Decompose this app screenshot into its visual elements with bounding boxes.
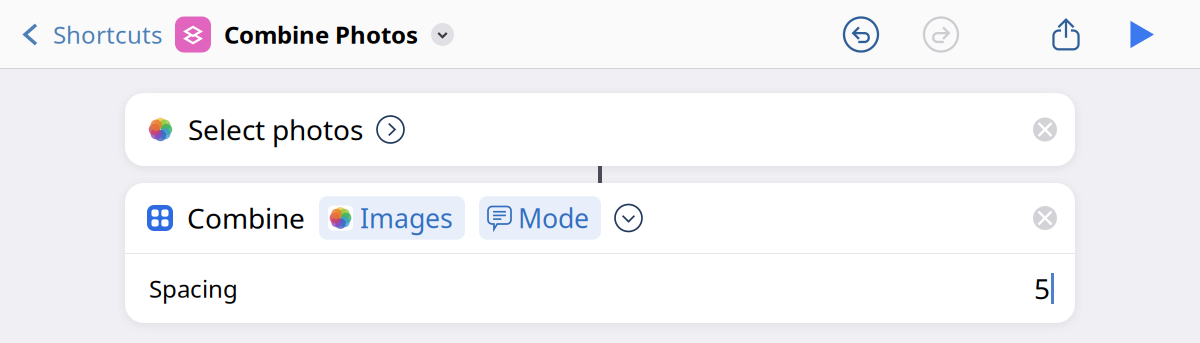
button[interactable]: Share	[1028, 3, 1104, 65]
staticText: Images	[360, 200, 453, 236]
staticText: 5	[1034, 270, 1050, 307]
staticText: Combine Photos	[224, 19, 418, 50]
button[interactable]: Spacing	[125, 254, 1075, 323]
button[interactable]: Combine Photos	[162, 10, 454, 58]
button[interactable]: Shortcuts	[0, 11, 162, 58]
button[interactable]: Redo	[901, 3, 981, 65]
staticText: Mode	[518, 200, 589, 236]
button[interactable]: Undo	[821, 3, 901, 65]
staticText: Select photos	[188, 111, 363, 148]
button[interactable]: Select photos	[125, 93, 1075, 166]
staticText: Combine	[187, 199, 305, 237]
staticText: Shortcuts	[53, 19, 162, 50]
staticText: Spacing	[149, 273, 238, 304]
button[interactable]: Combine	[125, 183, 1075, 253]
button[interactable]: Run	[1104, 3, 1178, 65]
